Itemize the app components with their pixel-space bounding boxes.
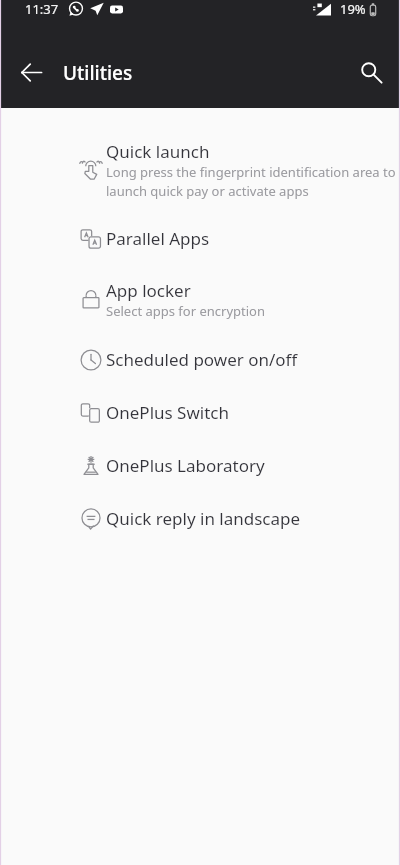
button[interactable]: Parallel Apps <box>0 212 400 265</box>
button[interactable]: App locker <box>0 265 400 333</box>
button[interactable]: OnePlus Laboratory <box>0 439 400 492</box>
staticText: Parallel Apps <box>106 227 210 250</box>
button[interactable]: Scheduled power on/off <box>0 333 400 386</box>
staticText: Utilities <box>63 60 133 86</box>
staticText: Select apps for encryption <box>106 302 265 320</box>
staticText: 11:37 <box>25 0 59 18</box>
button[interactable]: Back <box>3 36 59 108</box>
button[interactable]: OnePlus Switch <box>0 386 400 439</box>
staticText: 19% <box>340 0 366 18</box>
staticText: Scheduled power on/off <box>106 348 298 371</box>
staticText: OnePlus Laboratory <box>106 454 265 477</box>
button[interactable]: Quick launch <box>0 128 400 212</box>
button[interactable]: Search <box>343 36 399 108</box>
staticText: App locker <box>106 279 191 302</box>
button[interactable]: Quick reply in landscape <box>0 492 400 545</box>
staticText: Long press the fingerprint identificatio… <box>106 163 400 200</box>
staticText: OnePlus Switch <box>106 401 229 424</box>
staticText: Quick launch <box>106 140 210 163</box>
staticText: Quick reply in landscape <box>106 507 301 530</box>
